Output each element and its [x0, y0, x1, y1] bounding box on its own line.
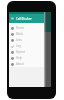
- staticText: Lists: [16, 38, 22, 42]
- staticText: Home: [16, 26, 24, 30]
- button[interactable]: Home: [9, 25, 44, 31]
- button[interactable]: Menu: [11, 17, 14, 20]
- staticText: Log: [16, 44, 21, 48]
- staticText: Help: [16, 56, 23, 60]
- button[interactable]: Report: [9, 49, 44, 55]
- staticText: About: [16, 62, 24, 66]
- button[interactable]: Block: [9, 31, 44, 37]
- staticText: Call Blocker: [16, 17, 32, 21]
- button[interactable]: Log: [9, 43, 44, 49]
- button[interactable]: Lists: [9, 37, 44, 43]
- button[interactable]: About: [9, 61, 44, 67]
- staticText: Block: [16, 32, 24, 36]
- button[interactable]: Help: [9, 55, 44, 61]
- staticText: Report: [16, 50, 25, 54]
